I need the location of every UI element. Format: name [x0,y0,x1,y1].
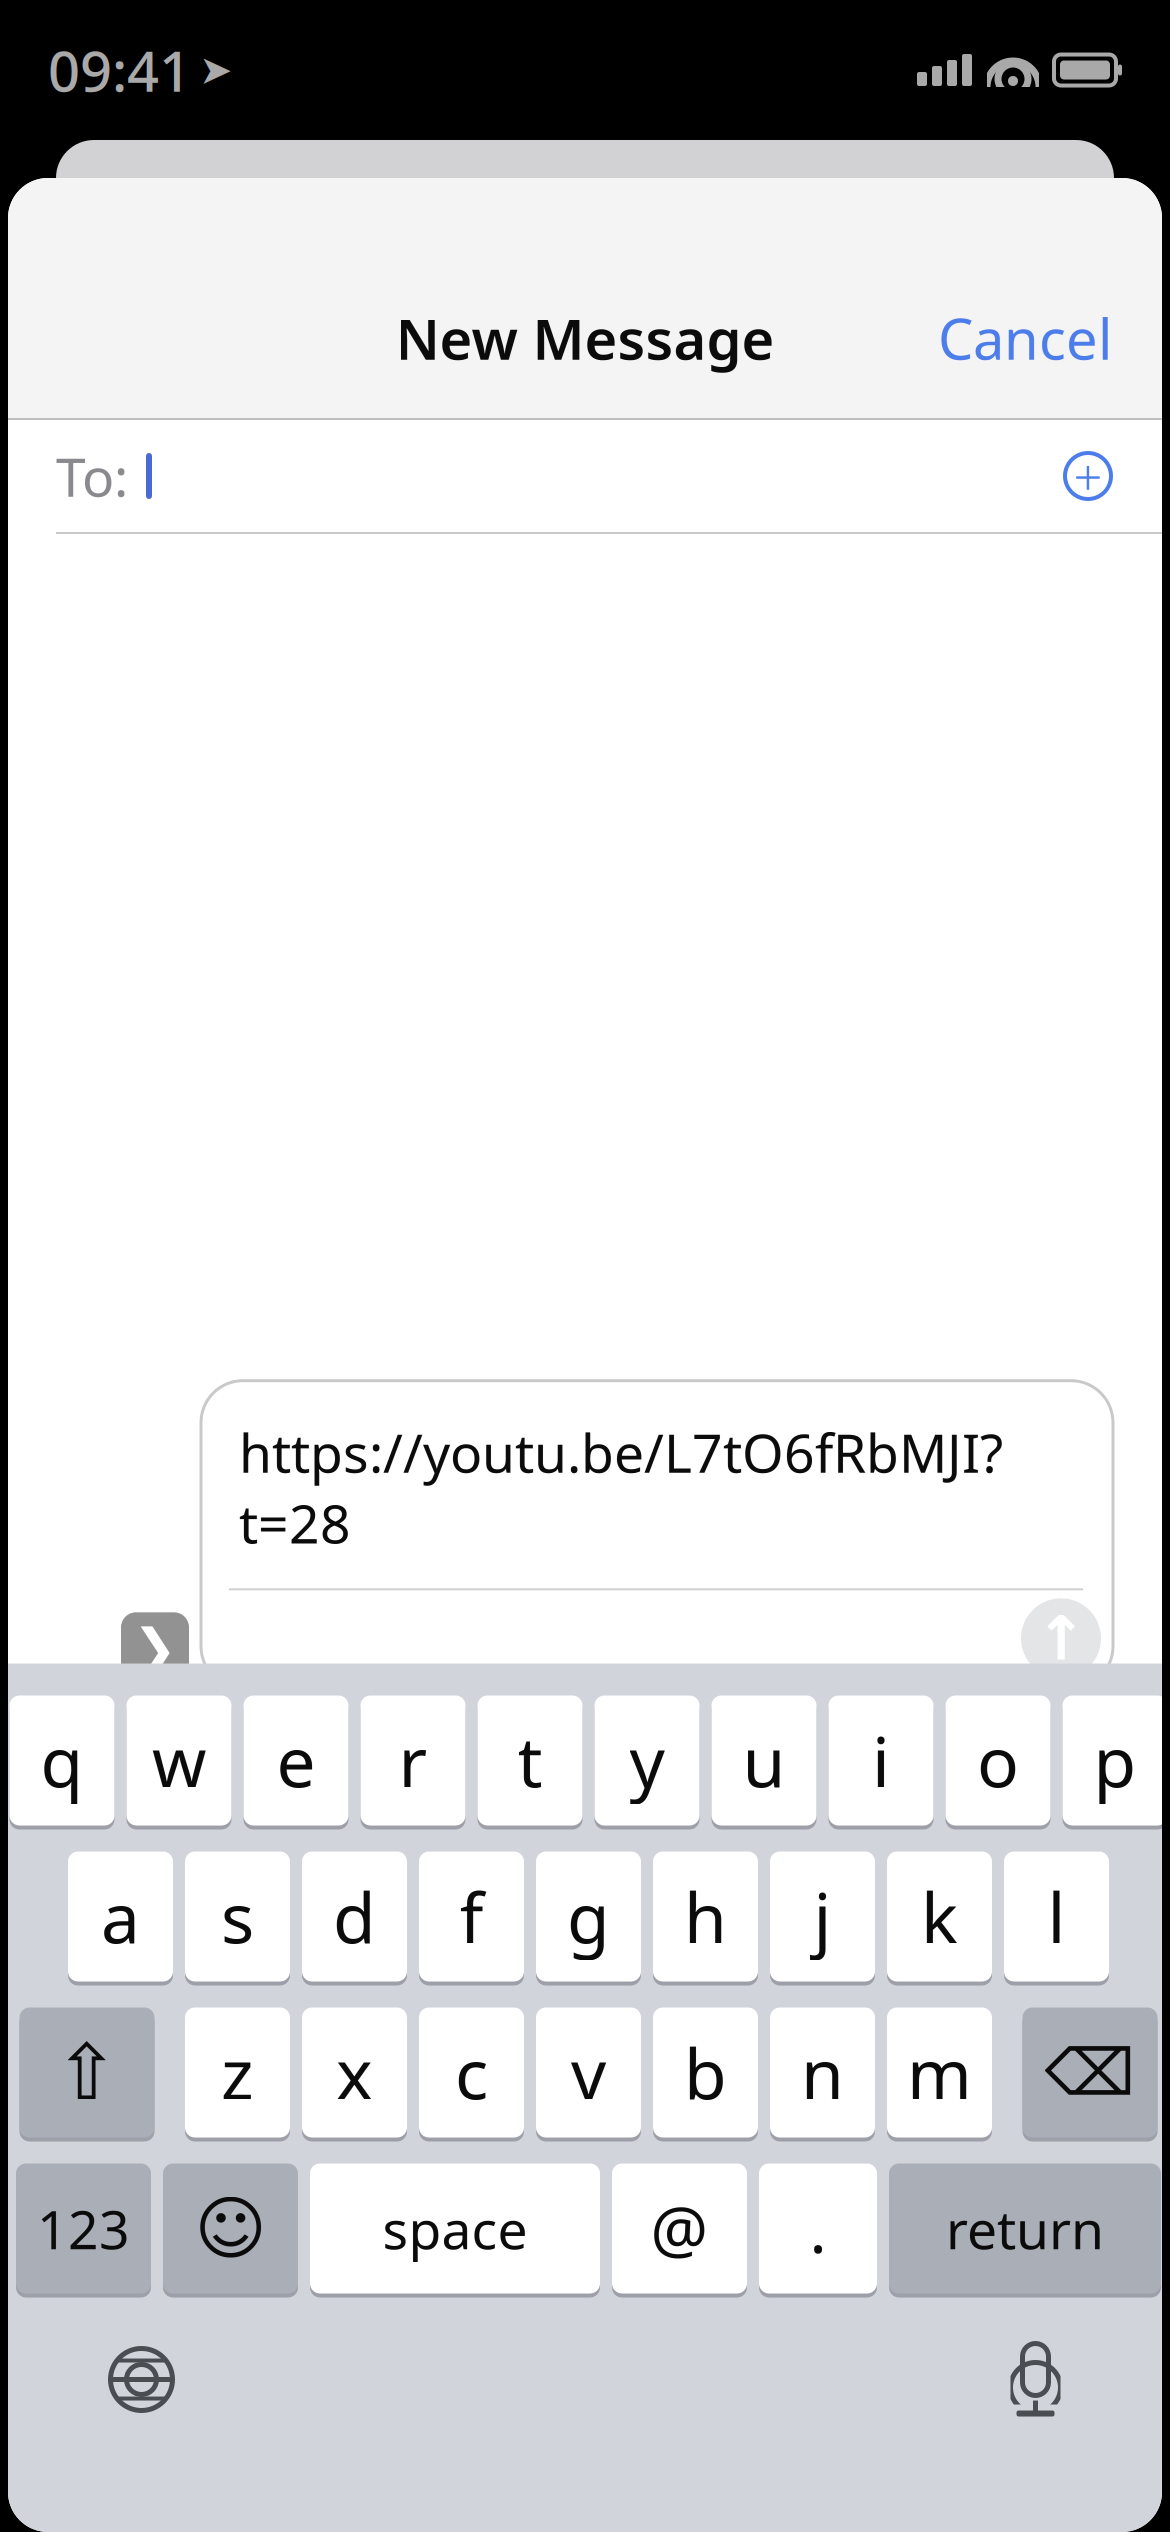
button[interactable]: @ [612,2161,747,2295]
staticText: n [801,2026,844,2119]
button[interactable]: Dictation [975,2329,1095,2429]
button[interactable]: Delete [1022,2005,1157,2139]
button[interactable]: b [653,2005,758,2139]
staticText: space [382,2193,527,2264]
staticText: f [459,1870,483,1963]
button[interactable]: r [360,1693,465,1827]
button[interactable]: g [536,1849,641,1983]
staticText: d [333,1870,376,1963]
staticText: t [517,1714,542,1807]
button[interactable]: n [770,2005,875,2139]
staticText: c [455,2026,488,2119]
button[interactable]: t [477,1693,582,1827]
staticText: ⇧ [54,2029,119,2116]
staticText: a [101,1870,140,1963]
button[interactable]: a [68,1849,173,1983]
staticText: z [221,2026,254,2119]
staticText: 123 [37,2193,130,2264]
button[interactable]: o [945,1693,1050,1827]
button[interactable]: c [419,2005,524,2139]
button[interactable]: Next keyboard [81,2329,201,2429]
staticText: y [629,1714,664,1807]
staticText: ⌫ [1044,2036,1135,2109]
button[interactable]: 123 [16,2161,151,2295]
button[interactable]: p [1062,1693,1167,1827]
staticText: + [1073,442,1102,510]
staticText: To: [56,441,128,511]
button[interactable]: w [126,1693,231,1827]
staticText: u [742,1714,785,1807]
staticText: ↑ [1035,1603,1086,1673]
staticText: r [398,1714,427,1807]
button[interactable]: Send [1021,1598,1101,1678]
button[interactable]: e [243,1693,348,1827]
button[interactable]: k [887,1849,992,1983]
staticText: ☺ [194,2189,266,2268]
staticText: j [813,1870,831,1963]
button[interactable]: ☺ [163,2161,298,2295]
staticText: https://youtu.be/L7tO6fRbMJI?t=28 [239,1417,1003,1558]
staticText: l [1047,1870,1065,1963]
button[interactable]: q [9,1693,114,1827]
button[interactable]: h [653,1849,758,1983]
staticText: x [336,2026,373,2119]
button[interactable]: v [536,2005,641,2139]
staticText: . [809,2186,826,2271]
button[interactable]: y [594,1693,699,1827]
staticText: o [977,1714,1019,1807]
button[interactable]: z [185,2005,290,2139]
button[interactable]: f [419,1849,524,1983]
button[interactable]: Cancel [914,283,1136,393]
staticText: h [684,1870,727,1963]
button[interactable]: m [887,2005,992,2139]
button[interactable]: u [711,1693,816,1827]
staticText: 09:41 [48,33,191,107]
staticText: v [571,2026,606,2119]
staticText: @ [650,2186,708,2271]
staticText: g [567,1870,610,1963]
staticText: return [946,2193,1104,2264]
button[interactable]: Add contact [1046,434,1130,518]
button[interactable]: s [185,1849,290,1983]
button[interactable]: d [302,1849,407,1983]
staticText: m [907,2026,972,2119]
button[interactable]: . [759,2161,877,2295]
staticText: p [1093,1714,1136,1807]
staticText: New Message [395,301,774,375]
button[interactable]: x [302,2005,407,2139]
staticText: ❯ [132,1618,177,1679]
staticText: e [276,1714,315,1807]
button[interactable]: j [770,1849,875,1983]
button[interactable]: i [828,1693,933,1827]
button[interactable]: space [310,2161,600,2295]
staticText: i [872,1714,890,1807]
staticText: ➤ [199,47,233,93]
button[interactable]: Shift [19,2005,154,2139]
staticText: q [40,1714,83,1807]
staticText: w [152,1714,206,1807]
button[interactable]: Apps [121,1612,189,1684]
staticText: k [921,1870,958,1963]
staticText: b [684,2026,727,2119]
button[interactable]: l [1004,1849,1109,1983]
staticText: Cancel [938,301,1112,375]
staticText: s [221,1870,254,1963]
button[interactable]: return [889,2161,1161,2295]
